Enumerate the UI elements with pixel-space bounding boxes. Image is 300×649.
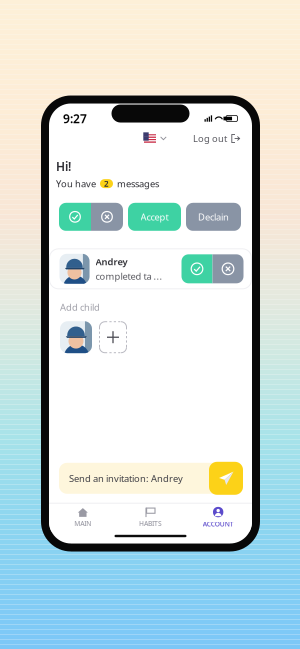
button[interactable]: Decline all: [91, 203, 123, 231]
staticText: Add child: [60, 301, 100, 313]
button[interactable]: Decline Andrey's task: [212, 254, 243, 283]
button[interactable]: Language: [144, 130, 167, 147]
staticText: MAIN: [74, 519, 91, 528]
staticText: You have: [56, 177, 96, 190]
staticText: Accept: [140, 211, 168, 223]
staticText: Log out: [193, 132, 227, 145]
staticText: HABITS: [139, 519, 162, 528]
button[interactable]: Add child: [99, 321, 127, 353]
button[interactable]: Approve all: [59, 203, 91, 231]
button[interactable]: Send invitation: [209, 462, 243, 495]
staticText: Send an invitation: Andrey: [69, 472, 183, 484]
button[interactable]: HABITS: [117, 503, 184, 532]
staticText: Declain: [198, 211, 229, 223]
staticText: 2: [104, 178, 109, 189]
staticText: Hi!: [56, 158, 71, 174]
staticText: Andrey: [95, 255, 127, 268]
staticText: messages: [117, 177, 159, 190]
button[interactable]: Declain: [186, 203, 241, 231]
button[interactable]: Log out: [193, 128, 240, 149]
staticText: completed ta ...: [95, 270, 162, 282]
button[interactable]: Approve Andrey's task: [181, 254, 212, 283]
staticText: 9:27: [63, 110, 87, 126]
button[interactable]: Accept: [128, 203, 181, 231]
button[interactable]: MAIN: [49, 503, 117, 532]
staticText: ACCOUNT: [203, 520, 234, 528]
button[interactable]: ACCOUNT: [184, 503, 252, 532]
